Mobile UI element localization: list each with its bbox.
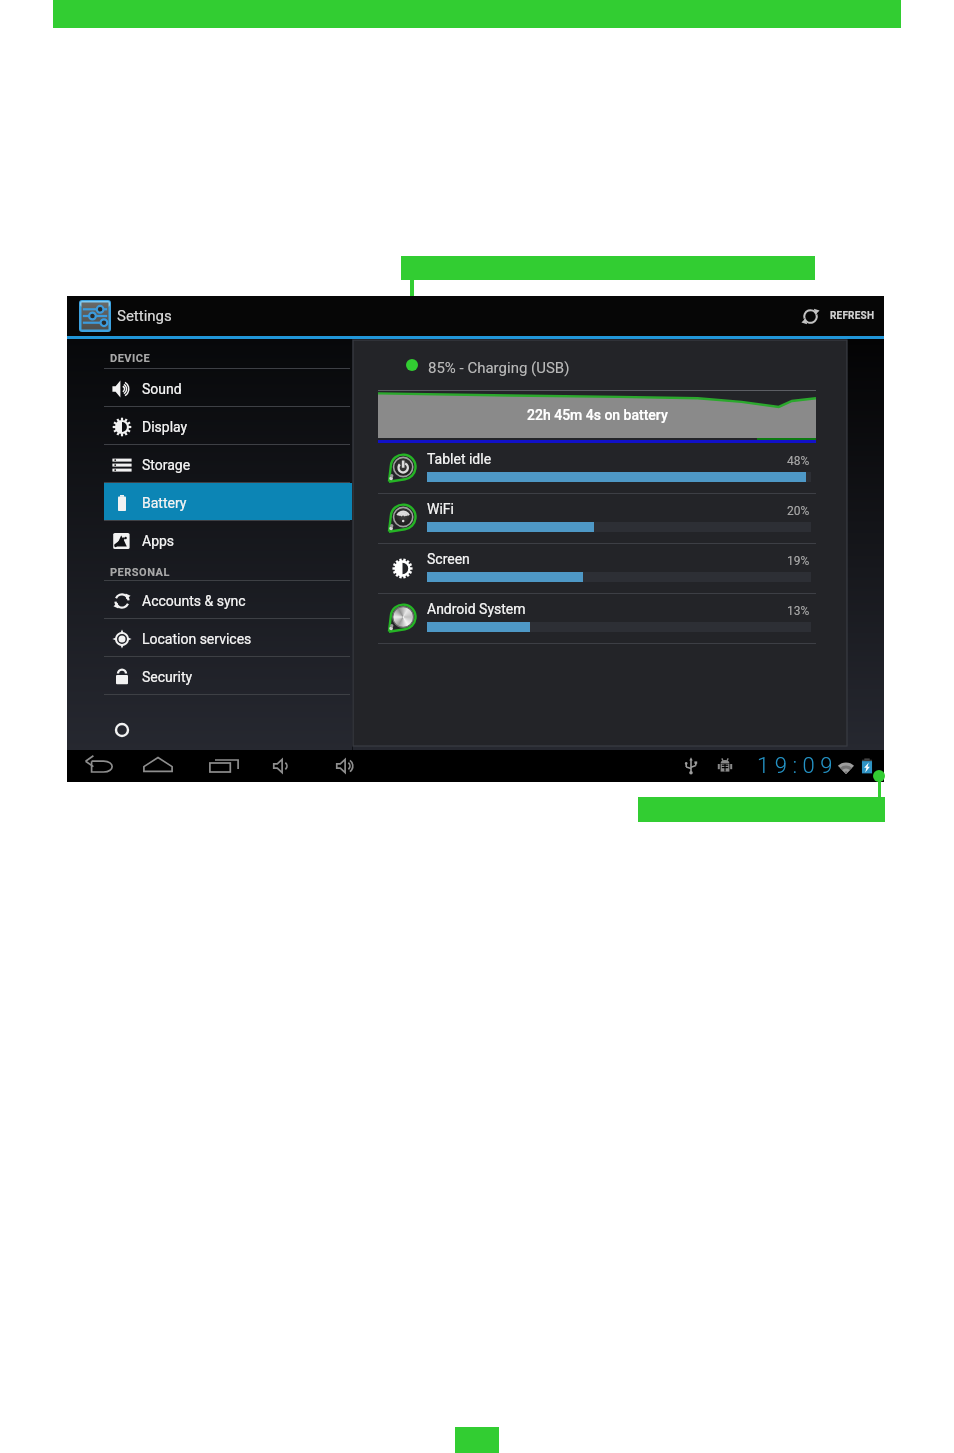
staticText: 20% xyxy=(787,504,810,518)
staticText: Screen xyxy=(427,551,470,567)
button[interactable]: Tablet idle xyxy=(353,446,847,496)
button[interactable]: Accounts & sync xyxy=(104,581,353,618)
staticText: 48% xyxy=(787,454,810,468)
staticText: PERSONAL xyxy=(110,566,170,579)
button[interactable]: Screen xyxy=(353,546,847,596)
button[interactable]: WiFi xyxy=(353,496,847,546)
button[interactable]: Recent apps xyxy=(209,750,239,782)
staticText: Sound xyxy=(142,381,182,397)
staticText: Display xyxy=(142,419,188,435)
staticText: DEVICE xyxy=(110,352,151,365)
staticText: Storage xyxy=(142,457,191,473)
staticText: WiFi xyxy=(427,501,454,517)
staticText: Settings xyxy=(117,307,172,325)
button[interactable]: REFRESH xyxy=(796,296,880,336)
button[interactable]: Volume down xyxy=(268,750,298,782)
button[interactable]: Storage xyxy=(104,445,353,482)
staticText: 13% xyxy=(787,604,810,618)
staticText: REFRESH xyxy=(830,310,875,322)
button[interactable]: Home xyxy=(143,750,173,782)
button[interactable]: Location services xyxy=(104,619,353,656)
button[interactable]: Battery xyxy=(104,483,353,520)
staticText: 85% - Charging (USB) xyxy=(428,359,570,377)
button[interactable]: Sound xyxy=(104,369,353,406)
button[interactable]: Security xyxy=(104,657,353,694)
staticText: Location services xyxy=(142,631,252,647)
staticText: Android System xyxy=(427,601,526,617)
staticText: Security xyxy=(142,669,193,685)
staticText: 22h 45m 4s on battery xyxy=(527,407,668,423)
staticText: 19:09 xyxy=(757,753,838,779)
staticText: Tablet idle xyxy=(427,451,492,467)
staticText: Apps xyxy=(142,533,175,549)
button[interactable]: Battery charging xyxy=(857,750,877,782)
button[interactable]: Apps xyxy=(104,521,353,558)
button[interactable]: Back xyxy=(85,750,115,782)
button[interactable]: Display xyxy=(104,407,353,444)
staticText: Battery xyxy=(142,495,187,511)
button[interactable]: Android System xyxy=(353,596,847,646)
button[interactable] xyxy=(104,695,353,732)
button[interactable]: USB connected xyxy=(680,750,702,782)
staticText: 19% xyxy=(787,554,810,568)
button[interactable]: USB debugging xyxy=(713,750,737,782)
button[interactable]: Volume up xyxy=(331,750,361,782)
button[interactable]: Wi-Fi xyxy=(834,750,858,782)
staticText: Accounts & sync xyxy=(142,593,246,609)
